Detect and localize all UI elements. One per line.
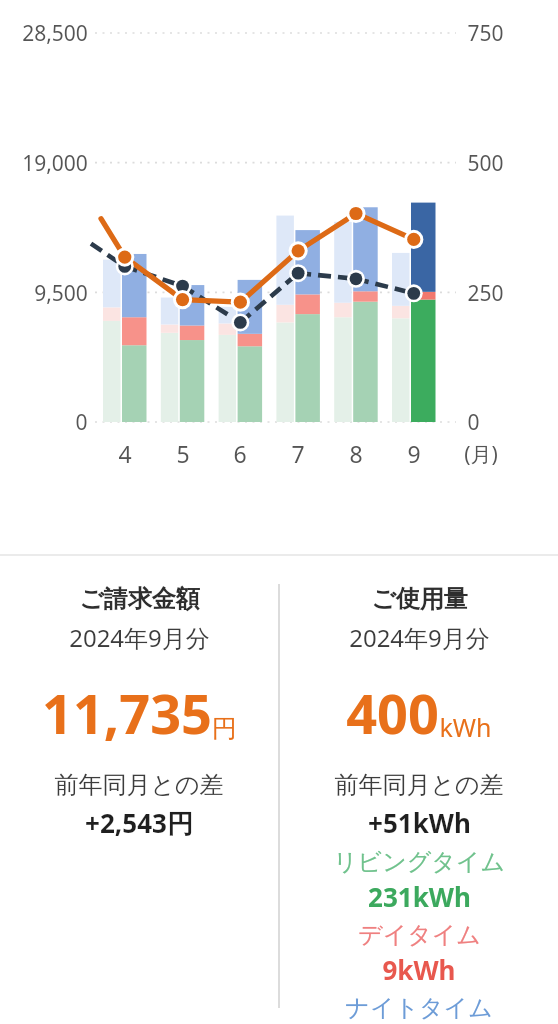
staticText: 0: [75, 408, 88, 437]
staticText: +51kWh: [368, 805, 471, 840]
staticText: 19,000: [22, 149, 88, 178]
staticText: 750: [467, 19, 504, 48]
staticText: ご使用量: [371, 584, 468, 614]
staticText: 前年同月との差: [54, 770, 224, 800]
staticText: 11,735: [42, 676, 212, 750]
staticText: 9kWh: [382, 952, 456, 987]
staticText: kWh: [439, 710, 492, 744]
button[interactable]: ご使用量: [280, 556, 558, 1024]
staticText: デイタイム: [358, 920, 481, 950]
staticText: 231kWh: [368, 879, 471, 914]
staticText: 0: [467, 408, 480, 437]
staticText: リビングタイム: [333, 847, 505, 877]
staticText: 6: [233, 438, 247, 469]
button[interactable]: ご請求金額: [0, 556, 278, 1024]
staticText: 4: [118, 438, 132, 469]
staticText: (月): [464, 440, 498, 469]
staticText: 2024年9月分: [69, 621, 210, 654]
staticText: 400: [346, 676, 439, 750]
staticText: 2024年9月分: [349, 621, 490, 654]
staticText: ご請求金額: [79, 584, 200, 614]
staticText: +2,543円: [85, 805, 193, 841]
staticText: 9: [407, 438, 421, 469]
staticText: 5: [176, 438, 190, 469]
staticText: 250: [467, 279, 504, 308]
staticText: 8: [349, 438, 363, 469]
staticText: 500: [467, 149, 504, 178]
staticText: 7: [291, 438, 305, 469]
staticText: 9,500: [34, 279, 88, 308]
staticText: ナイトタイム: [345, 993, 493, 1023]
staticText: 円: [212, 713, 237, 744]
staticText: 前年同月との差: [334, 770, 504, 800]
staticText: 28,500: [22, 19, 88, 48]
